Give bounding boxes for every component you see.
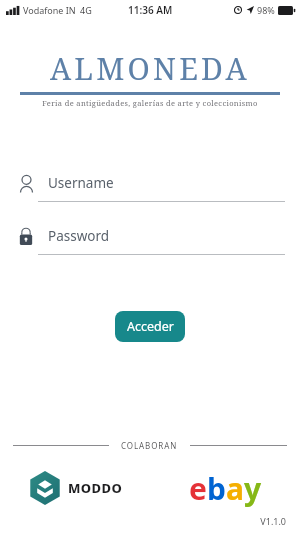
staticText: 11:36 AM — [128, 3, 173, 17]
staticText: e — [189, 468, 207, 509]
staticText: Acceder — [127, 318, 174, 335]
staticText: 4G — [80, 4, 92, 16]
staticText: Username — [48, 174, 114, 192]
staticText: ALMONEDA — [50, 48, 250, 89]
staticText: b — [207, 468, 226, 509]
staticText: Vodafone IN — [23, 4, 76, 16]
staticText: y — [244, 468, 262, 509]
button[interactable]: Password — [14, 223, 285, 255]
staticText: Feria de antigüedades, galerías de arte … — [20, 98, 280, 108]
staticText: Password — [48, 227, 110, 245]
staticText: V1.1.0 — [0, 515, 286, 527]
staticText: 98% — [257, 4, 275, 16]
staticText: COLABORAN — [121, 440, 178, 451]
button[interactable]: Username — [14, 170, 285, 202]
staticText: MODDO — [68, 479, 123, 497]
button[interactable]: Acceder — [115, 311, 185, 342]
staticText: a — [226, 468, 244, 509]
